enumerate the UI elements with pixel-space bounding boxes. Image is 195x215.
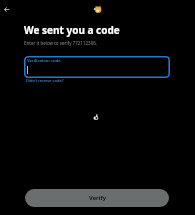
button[interactable]: Verify xyxy=(25,189,169,207)
staticText: Enter it below to verify 772112306. xyxy=(24,40,97,46)
button[interactable]: Didn't receive code? xyxy=(26,78,64,83)
staticText: We sent you a code xyxy=(24,23,120,37)
button[interactable]: Verification code xyxy=(24,56,170,78)
button[interactable]: Back xyxy=(0,3,13,16)
staticText: Verification code xyxy=(27,57,61,63)
staticText: Verify xyxy=(89,194,106,202)
